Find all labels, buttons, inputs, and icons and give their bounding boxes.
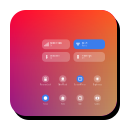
staticText: Brightness <box>93 84 102 86</box>
button[interactable]: Home <box>54 94 71 105</box>
staticText: Timer <box>78 103 82 105</box>
button[interactable]: Screen Mirror <box>72 75 89 86</box>
staticText: Home <box>82 44 87 47</box>
staticText: On <box>50 57 52 59</box>
staticText: Rotation Lock <box>40 84 51 86</box>
button[interactable]: Mobile Data <box>42 39 70 49</box>
staticText: Off <box>82 57 85 59</box>
staticText: Bluetooth <box>50 55 59 57</box>
button[interactable]: Flashlight <box>73 52 105 62</box>
staticText: Silent Mode <box>58 84 67 86</box>
staticText: Home <box>61 103 65 105</box>
button[interactable]: Wi-Fi <box>73 39 105 49</box>
button[interactable]: Rotation Lock <box>37 75 54 86</box>
staticText: Flashlight <box>82 55 92 57</box>
button[interactable]: Camera <box>89 94 106 105</box>
button[interactable]: Silent Mode <box>54 75 71 86</box>
button[interactable]: Brightness <box>89 75 106 86</box>
staticText: Camera <box>94 103 100 105</box>
button[interactable]: Focus <box>37 94 54 105</box>
button[interactable]: Timer <box>72 94 89 105</box>
staticText: Focus <box>43 103 48 105</box>
staticText: Wi-Fi <box>82 42 88 44</box>
button[interactable]: Bluetooth <box>42 52 70 62</box>
staticText: Mobile Data <box>50 42 62 44</box>
staticText: Screen Mirror <box>74 84 86 86</box>
staticText: On <box>50 44 52 47</box>
